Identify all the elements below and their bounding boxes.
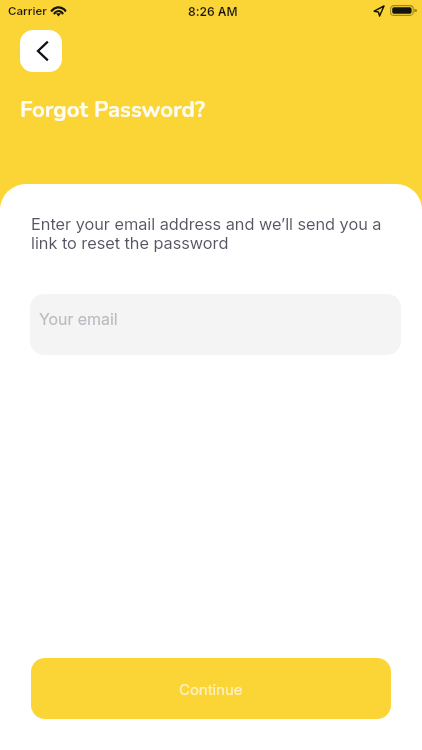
staticText: Forgot Password? [20, 95, 205, 125]
staticText: Carrier [8, 4, 47, 18]
button[interactable]: Continue [31, 658, 391, 719]
staticText: Enter your email address and we’ll send … [31, 214, 382, 253]
button[interactable]: Your email [30, 294, 401, 355]
staticText: 8:26 AM [188, 4, 238, 19]
button[interactable]: Back [20, 30, 62, 72]
staticText: Continue [179, 680, 243, 698]
staticText: Your email [39, 309, 118, 328]
